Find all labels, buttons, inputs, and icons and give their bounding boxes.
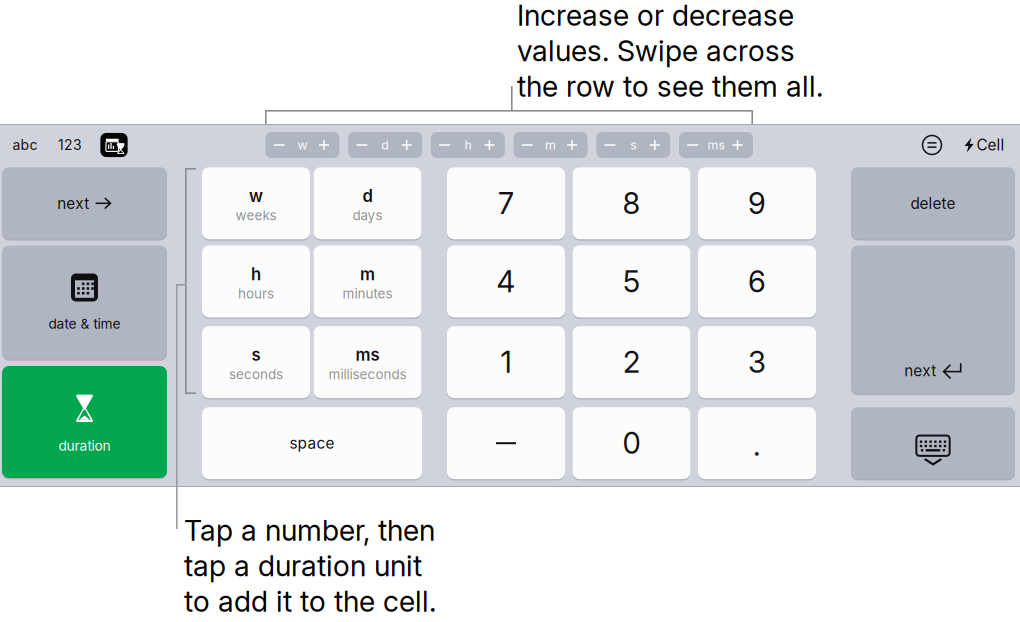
button[interactable]: Adjust h (431, 132, 505, 158)
button[interactable]: next (851, 245, 1015, 394)
staticText: Cell (976, 136, 1004, 154)
staticText: w (249, 186, 263, 206)
button[interactable]: 3 (698, 326, 816, 398)
staticText: milliseconds (328, 366, 406, 382)
staticText: s (251, 345, 260, 365)
button[interactable]: delete (851, 167, 1015, 239)
button[interactable]: . (698, 407, 816, 479)
button[interactable]: next (2, 167, 167, 239)
button[interactable]: Change keyboard (95, 131, 133, 159)
button[interactable]: 7 (447, 167, 565, 239)
staticText: 5 (623, 264, 640, 299)
staticText: Increase or decrease (517, 0, 794, 33)
button[interactable]: w (202, 167, 310, 239)
button[interactable]: abc (6, 131, 44, 159)
staticText: Tap a number, then (184, 513, 435, 548)
staticText: 0 (622, 425, 640, 461)
staticText: ms (355, 345, 379, 365)
button[interactable]: 2 (572, 326, 690, 398)
staticText: s (630, 138, 636, 152)
staticText: ms (707, 138, 724, 152)
staticText: hours (238, 285, 274, 302)
button[interactable]: Adjust w (265, 132, 339, 158)
staticText: 1 (500, 344, 511, 380)
staticText: d (381, 138, 389, 152)
staticText: delete (910, 194, 955, 213)
staticText: minutes (342, 285, 392, 302)
button[interactable]: 8 (572, 167, 690, 239)
staticText: 7 (498, 186, 514, 221)
staticText: tap a duration unit (184, 548, 422, 583)
staticText: 2 (623, 344, 640, 380)
button[interactable]: m (313, 245, 421, 317)
button[interactable]: minus (447, 407, 565, 479)
staticText: next (57, 194, 89, 213)
button[interactable]: h (202, 245, 310, 317)
button[interactable]: ms (313, 326, 421, 398)
staticText: m (360, 264, 375, 284)
staticText: h (464, 138, 471, 152)
staticText: date & time (48, 315, 120, 332)
staticText: values. Swipe across (517, 33, 795, 68)
button[interactable]: Adjust m (514, 132, 588, 158)
button[interactable]: 9 (698, 167, 816, 239)
button[interactable]: 6 (698, 245, 816, 317)
button[interactable]: Adjust ms (679, 132, 753, 158)
button[interactable]: Cell (955, 131, 1013, 159)
button[interactable]: 1 (447, 326, 565, 398)
staticText: weeks (235, 207, 276, 224)
staticText: . (753, 427, 761, 463)
button[interactable]: space (202, 407, 422, 479)
button[interactable]: Format (917, 131, 947, 159)
staticText: 4 (496, 264, 515, 299)
staticText: h (251, 264, 261, 284)
staticText: duration (58, 437, 110, 454)
button[interactable]: Hide keyboard (851, 407, 1015, 479)
button[interactable]: 123 (51, 131, 89, 159)
staticText: 6 (748, 264, 766, 299)
staticText: space (289, 434, 334, 452)
button[interactable]: 4 (447, 245, 565, 317)
staticText: next (904, 361, 936, 380)
staticText: abc (12, 136, 37, 153)
staticText: 123 (58, 136, 82, 153)
staticText: 3 (748, 344, 766, 380)
button[interactable]: 5 (572, 245, 690, 317)
button[interactable]: Adjust d (348, 132, 422, 158)
staticText: m (545, 138, 556, 152)
staticText: days (352, 207, 382, 224)
button[interactable]: Adjust s (596, 132, 670, 158)
staticText: 9 (748, 186, 766, 221)
button[interactable]: date & time (2, 245, 167, 359)
button[interactable]: duration (2, 366, 167, 478)
staticText: d (362, 186, 372, 206)
button[interactable]: s (202, 326, 310, 398)
staticText: w (297, 138, 307, 152)
staticText: the row to see them all. (517, 69, 823, 104)
staticText: 8 (622, 186, 640, 221)
button[interactable]: 0 (572, 407, 690, 479)
staticText: to add it to the cell. (184, 584, 436, 619)
button[interactable]: d (313, 167, 421, 239)
staticText: seconds (229, 366, 283, 382)
